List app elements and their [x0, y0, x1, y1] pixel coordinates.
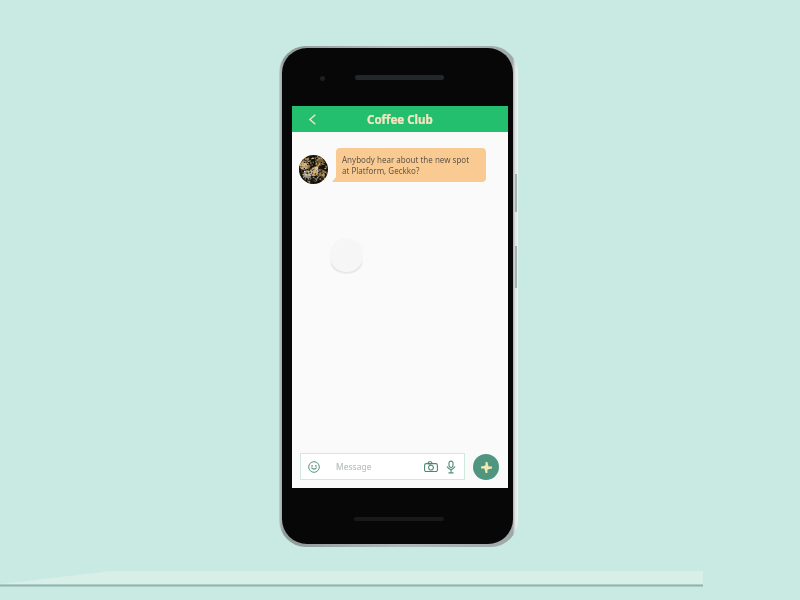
- button[interactable]: Voice message: [443, 459, 459, 475]
- staticText: Coffee Club: [367, 112, 433, 128]
- button[interactable]: Camera: [423, 459, 439, 475]
- staticText: at Platform, Geckko?: [342, 165, 420, 176]
- button[interactable]: New message: [473, 454, 499, 480]
- staticText: Message: [336, 461, 372, 473]
- button[interactable]: Message input field: [300, 453, 465, 480]
- button[interactable]: Back: [292, 106, 332, 132]
- staticText: Anybody hear about the new spot: [342, 154, 470, 165]
